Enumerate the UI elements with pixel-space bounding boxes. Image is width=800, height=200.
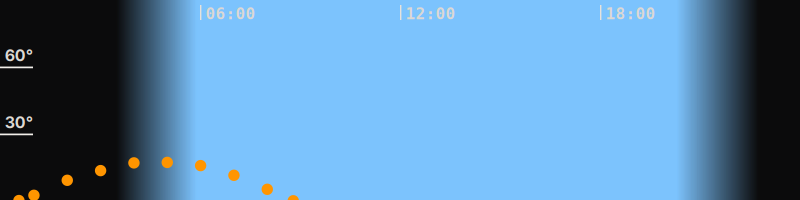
- staticText: 60°: [5, 46, 33, 65]
- staticText: 12:00: [405, 4, 455, 23]
- staticText: 18:00: [605, 4, 655, 23]
- button[interactable]: Moon elevation chart: [0, 0, 800, 200]
- staticText: 06:00: [205, 4, 255, 23]
- staticText: 30°: [5, 113, 33, 132]
